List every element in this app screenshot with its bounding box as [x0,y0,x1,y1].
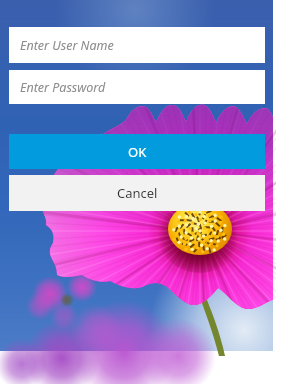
button[interactable]: Cancel [9,175,265,211]
button[interactable]: Enter User Name [9,27,265,63]
button[interactable]: OK [9,134,265,169]
staticText: OK [128,143,147,161]
staticText: Cancel [117,184,158,202]
staticText: Enter User Name [20,37,114,54]
staticText: Enter Password [20,79,106,96]
button[interactable]: Enter Password [9,70,265,104]
